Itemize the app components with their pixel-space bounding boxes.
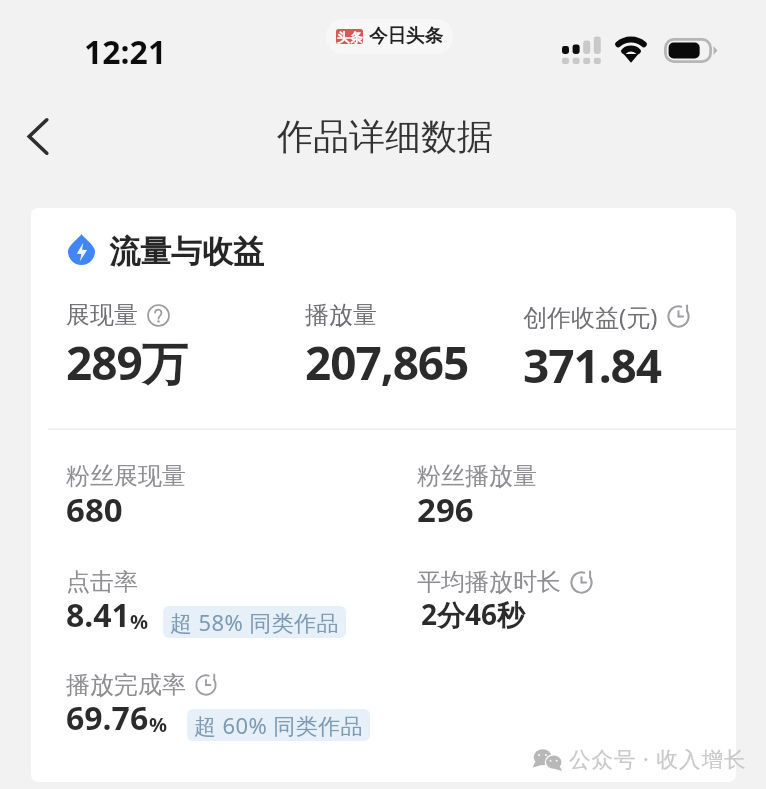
staticText: 粉丝展现量	[66, 461, 186, 491]
staticText: 8.41	[66, 593, 130, 637]
staticText: 371.84	[523, 334, 661, 397]
staticText: %	[130, 608, 149, 635]
staticText: 680	[66, 487, 123, 532]
staticText: 粉丝播放量	[417, 461, 537, 491]
staticText: %	[149, 711, 168, 738]
staticText: 创作收益(元)	[523, 300, 658, 333]
staticText: 296	[417, 487, 474, 532]
button[interactable]: 超 58% 同类作品	[170, 606, 339, 638]
staticText: 作品详细数据	[277, 114, 493, 159]
staticText: 头条	[337, 29, 363, 44]
button[interactable]: Back	[8, 106, 68, 166]
staticText: 今日头条	[369, 24, 443, 47]
staticText: 207,865	[305, 331, 469, 394]
staticText: 平均播放时长	[417, 567, 561, 597]
staticText: 流量与收益	[109, 232, 264, 271]
button[interactable]: 超 60% 同类作品	[194, 709, 363, 741]
staticText: 超 60% 同类作品	[194, 710, 363, 740]
staticText: 12:21	[84, 30, 167, 74]
staticText: 播放完成率	[66, 670, 186, 700]
staticText: 点击率	[66, 567, 138, 597]
staticText: 超 58% 同类作品	[170, 607, 339, 637]
staticText: 公众号 · 收入增长	[569, 744, 747, 773]
staticText: 展现量	[66, 300, 138, 330]
staticText: 289万	[66, 331, 187, 394]
staticText: 播放量	[305, 300, 377, 330]
staticText: 69.76	[66, 696, 149, 740]
staticText: 2分46秒	[421, 595, 526, 633]
button[interactable]: Toutiao app	[326, 19, 453, 54]
